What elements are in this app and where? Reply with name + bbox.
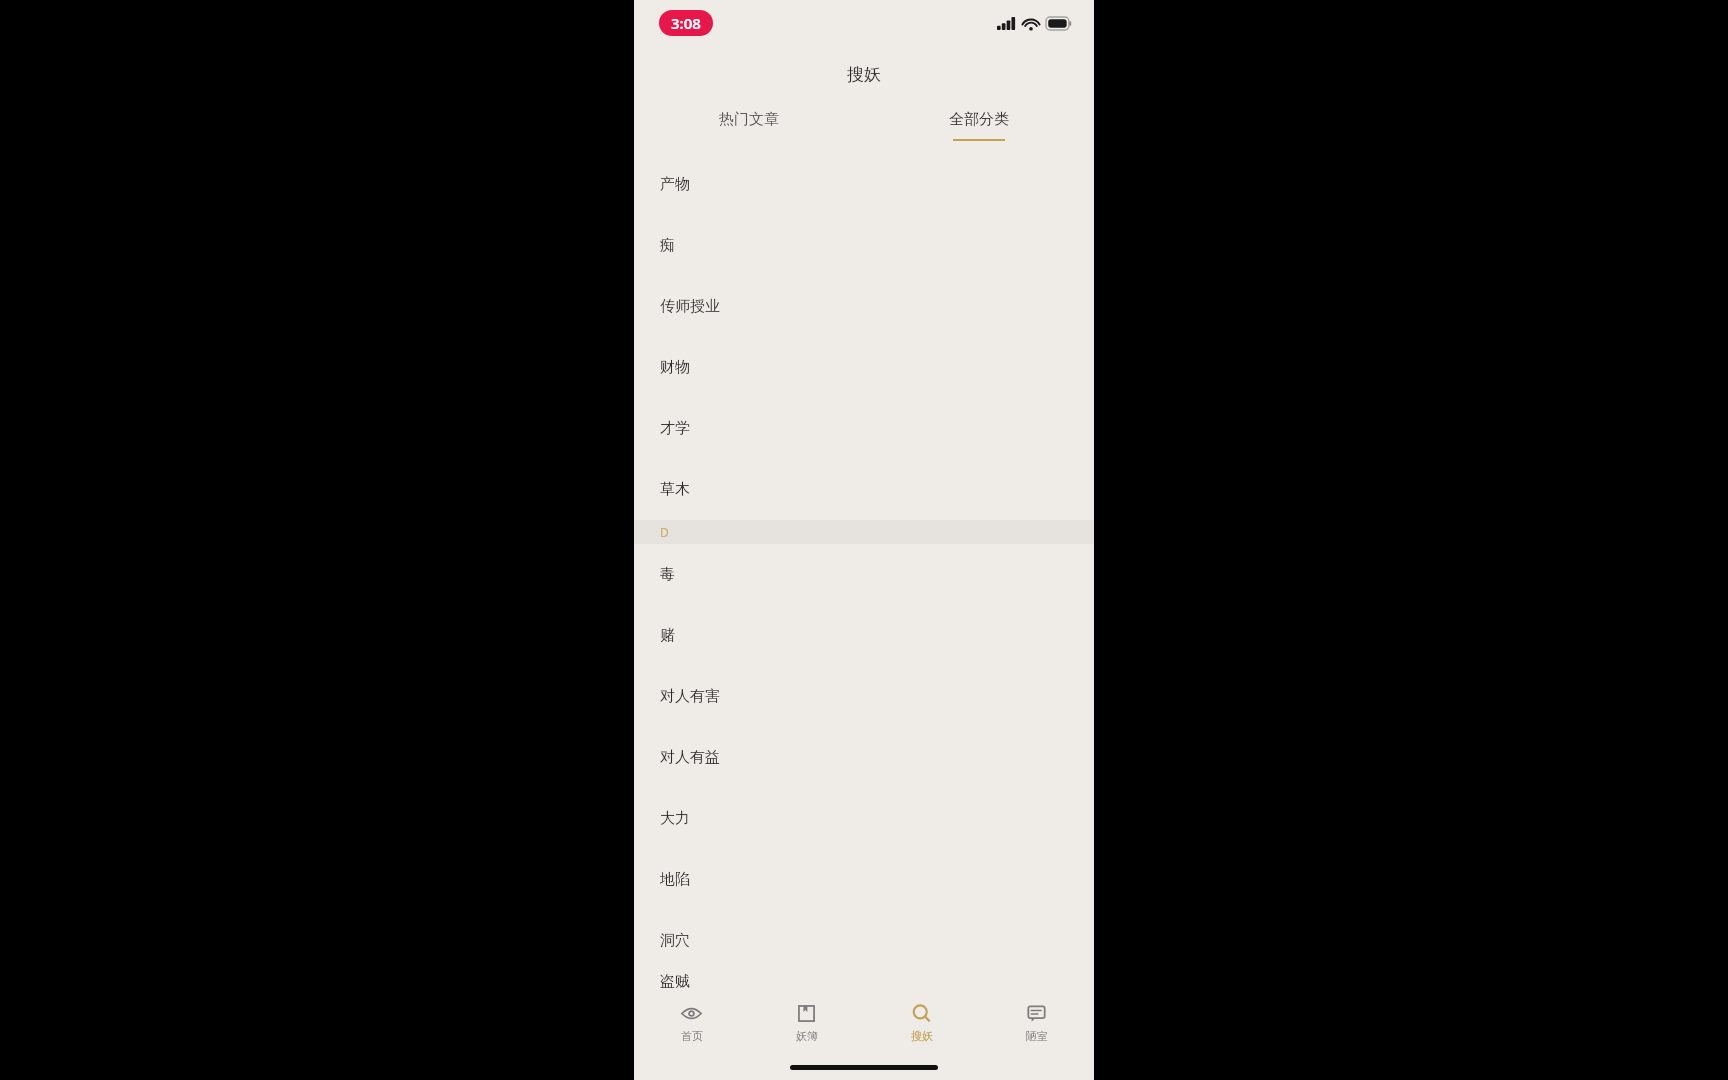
staticText: D [660, 524, 669, 540]
staticText: 热门文章 [719, 110, 779, 129]
staticText: 草木 [660, 480, 690, 499]
staticText: 大力 [660, 809, 690, 828]
button[interactable]: 首页 [634, 992, 749, 1054]
staticText: 全部分类 [949, 110, 1009, 129]
button[interactable]: 大力 [634, 788, 1094, 849]
button[interactable]: 陋室 [979, 992, 1094, 1054]
staticText: 盗贼 [660, 972, 690, 991]
button[interactable]: 痴 [634, 215, 1094, 276]
staticText: 产物 [660, 175, 690, 194]
staticText: 3:08 [671, 13, 701, 33]
button[interactable]: 洞穴 [634, 910, 1094, 971]
button[interactable]: 全部分类 [864, 102, 1094, 154]
button[interactable]: 财物 [634, 337, 1094, 398]
staticText: 财物 [660, 358, 690, 377]
button[interactable]: 毒 [634, 544, 1094, 605]
staticText: 才学 [660, 419, 690, 438]
button[interactable]: 才学 [634, 398, 1094, 459]
staticText: 毒 [660, 565, 675, 584]
staticText: 传师授业 [660, 297, 720, 316]
staticText: 首页 [681, 1029, 703, 1043]
button[interactable]: 妖簿 [749, 992, 864, 1054]
staticText: 地陷 [660, 870, 690, 889]
button[interactable]: 地陷 [634, 849, 1094, 910]
button[interactable]: 赌 [634, 605, 1094, 666]
button[interactable]: 传师授业 [634, 276, 1094, 337]
staticText: 陋室 [1026, 1029, 1048, 1043]
button[interactable]: 搜妖 [864, 992, 979, 1054]
staticText: 搜妖 [847, 64, 881, 85]
staticText: 搜妖 [911, 1029, 933, 1043]
button[interactable]: 热门文章 [634, 102, 864, 154]
button[interactable]: 对人有害 [634, 666, 1094, 727]
staticText: 妖簿 [796, 1029, 818, 1043]
staticText: 对人有益 [660, 748, 720, 767]
staticText: 洞穴 [660, 931, 690, 950]
staticText: 对人有害 [660, 687, 720, 706]
button[interactable]: 草木 [634, 459, 1094, 520]
button[interactable]: 产物 [634, 154, 1094, 215]
staticText: 痴 [660, 236, 675, 255]
button[interactable]: 盗贼 [634, 971, 1094, 992]
staticText: 赌 [660, 626, 675, 645]
button[interactable]: 对人有益 [634, 727, 1094, 788]
